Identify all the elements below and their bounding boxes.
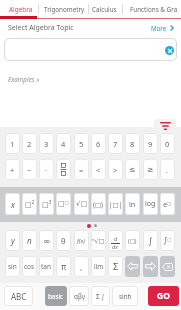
button[interactable]: □□ bbox=[56, 193, 71, 215]
button[interactable] bbox=[42, 0, 86, 19]
button[interactable]: 5 bbox=[74, 133, 89, 154]
button[interactable] bbox=[165, 46, 174, 55]
button[interactable] bbox=[4, 38, 177, 61]
staticText: π bbox=[61, 261, 67, 272]
button[interactable]: ∫□ bbox=[160, 230, 175, 251]
staticText: Trigonometry bbox=[44, 5, 85, 14]
button[interactable]: cos bbox=[22, 256, 37, 277]
staticText: θ bbox=[61, 236, 66, 246]
button[interactable]: · bbox=[39, 159, 54, 180]
button[interactable]: sinh bbox=[112, 286, 138, 306]
staticText: 2 bbox=[27, 139, 32, 149]
staticText: tan bbox=[41, 262, 52, 271]
button[interactable] bbox=[143, 256, 158, 277]
button[interactable]: More bbox=[148, 21, 178, 33]
button[interactable]: √□ bbox=[74, 193, 89, 215]
staticText: . bbox=[166, 165, 169, 175]
staticText: log bbox=[145, 199, 156, 209]
button[interactable] bbox=[160, 256, 175, 277]
button[interactable]: . bbox=[160, 159, 175, 180]
staticText: + bbox=[10, 165, 15, 175]
button[interactable]: ∫ bbox=[143, 230, 158, 251]
button[interactable] bbox=[0, 0, 40, 19]
staticText: ∫□ bbox=[163, 236, 172, 245]
button[interactable]: ∞ bbox=[39, 230, 54, 251]
staticText: (□) bbox=[128, 237, 137, 244]
button[interactable]: sin bbox=[5, 256, 20, 277]
button[interactable]: □2 bbox=[22, 193, 37, 215]
staticText: Σ ∫ bbox=[96, 292, 105, 301]
button[interactable]: = bbox=[74, 159, 89, 180]
staticText: · bbox=[45, 165, 48, 175]
button[interactable]: tan bbox=[39, 256, 54, 277]
button[interactable] bbox=[56, 159, 71, 180]
button[interactable]: < bbox=[91, 159, 106, 180]
button[interactable]: n bbox=[22, 230, 37, 251]
button[interactable] bbox=[126, 0, 181, 19]
staticText: sin bbox=[8, 262, 17, 271]
staticText: , bbox=[80, 262, 83, 272]
staticText: 3 bbox=[44, 139, 49, 149]
staticText: sinh bbox=[119, 292, 132, 301]
button[interactable] bbox=[90, 0, 120, 19]
button[interactable]: 2 bbox=[22, 133, 37, 154]
button[interactable]: (□) bbox=[91, 193, 106, 215]
staticText: GO bbox=[157, 290, 170, 302]
button[interactable]: 9 bbox=[143, 133, 158, 154]
button[interactable]: ln bbox=[125, 193, 140, 215]
button[interactable]: Examples » bbox=[6, 72, 50, 85]
staticText: 4 bbox=[61, 139, 66, 149]
button[interactable]: + bbox=[5, 159, 20, 180]
button[interactable]: ABC bbox=[4, 286, 33, 306]
button[interactable]: > bbox=[108, 159, 123, 180]
button[interactable]: 0 bbox=[160, 133, 175, 154]
button[interactable] bbox=[108, 230, 123, 251]
button[interactable]: basic bbox=[45, 286, 67, 306]
button[interactable]: θ bbox=[56, 230, 71, 251]
button[interactable]: π bbox=[56, 256, 71, 277]
button[interactable]: 8 bbox=[125, 133, 140, 154]
button[interactable]: n√□ bbox=[91, 230, 106, 251]
staticText: f(x) bbox=[77, 237, 86, 245]
button[interactable]: x bbox=[5, 193, 20, 215]
staticText: αβγ bbox=[74, 292, 85, 301]
button[interactable]: y bbox=[5, 230, 20, 251]
staticText: 8 bbox=[130, 139, 135, 149]
staticText: ≤ bbox=[129, 165, 136, 174]
staticText: > bbox=[113, 165, 118, 175]
staticText: √□ bbox=[76, 200, 88, 208]
staticText: Algebra bbox=[9, 5, 33, 14]
staticText: □3 bbox=[42, 199, 52, 209]
button[interactable]: αβγ bbox=[69, 286, 89, 306]
staticText: x bbox=[11, 199, 15, 210]
button[interactable]: f(x) bbox=[74, 230, 89, 251]
staticText: cos bbox=[24, 262, 35, 271]
staticText: = bbox=[79, 165, 84, 175]
button[interactable]: Σ bbox=[108, 256, 123, 277]
button[interactable]: ≤ bbox=[125, 159, 140, 180]
button[interactable]: □3 bbox=[39, 193, 54, 215]
button[interactable]: 3 bbox=[39, 133, 54, 154]
button[interactable]: 7 bbox=[108, 133, 123, 154]
button[interactable]: 6 bbox=[91, 133, 106, 154]
button[interactable]: ≥ bbox=[143, 159, 158, 180]
button[interactable]: GO bbox=[148, 286, 179, 306]
button[interactable]: lim bbox=[91, 256, 106, 277]
button[interactable]: |□| bbox=[108, 193, 123, 215]
button[interactable]: 1 bbox=[5, 133, 20, 154]
staticText: □□ bbox=[58, 200, 69, 208]
button[interactable]: , bbox=[74, 256, 89, 277]
button[interactable] bbox=[125, 256, 140, 277]
button[interactable]: (□) bbox=[125, 230, 140, 251]
button[interactable]: log bbox=[143, 193, 158, 215]
button[interactable]: − bbox=[22, 159, 37, 180]
staticText: − bbox=[27, 165, 32, 175]
staticText: ∫ bbox=[148, 236, 153, 246]
staticText: ln bbox=[129, 199, 136, 209]
button[interactable]: 4 bbox=[56, 133, 71, 154]
button[interactable]: e□ bbox=[160, 193, 175, 215]
staticText: 1 bbox=[10, 139, 15, 149]
staticText: n bbox=[27, 235, 32, 246]
button[interactable] bbox=[154, 119, 176, 133]
button[interactable]: Σ ∫ bbox=[91, 286, 110, 306]
